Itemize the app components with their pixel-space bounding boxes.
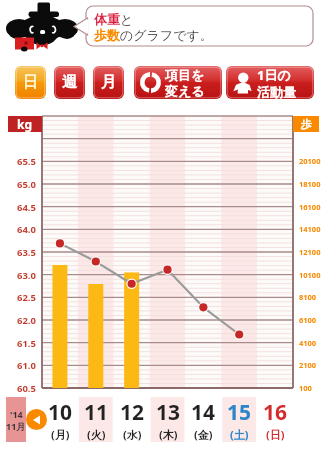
staticText: のグラフです。	[120, 27, 213, 43]
button[interactable]: 項目を	[134, 66, 222, 99]
button[interactable]: 週	[54, 66, 85, 99]
staticText: 変える	[165, 83, 205, 99]
staticText: 13	[156, 398, 181, 427]
staticText: 11月	[6, 420, 26, 432]
button[interactable]: 1日の	[226, 66, 314, 99]
staticText: kg	[17, 116, 33, 132]
staticText: (木)	[159, 427, 178, 442]
button[interactable]: 日	[15, 66, 46, 99]
staticText: 月	[101, 73, 116, 92]
staticText: 65.0	[17, 178, 36, 191]
staticText: 16	[263, 398, 288, 427]
staticText: 62.0	[17, 314, 36, 327]
staticText: 15	[227, 398, 252, 427]
staticText: 週	[62, 73, 77, 92]
staticText: 65.5	[17, 155, 36, 168]
staticText: と	[120, 11, 134, 27]
staticText: 14100	[299, 224, 321, 234]
staticText: 12100	[299, 247, 321, 257]
staticText: 60.5	[17, 382, 36, 395]
staticText: 63.5	[17, 246, 36, 259]
staticText: '14	[10, 408, 23, 420]
button[interactable]: 13	[150, 397, 186, 442]
button[interactable]: 10	[42, 397, 78, 442]
staticText: 8100	[299, 292, 317, 302]
staticText: 18100	[299, 179, 321, 189]
button[interactable]: 15	[221, 397, 257, 442]
staticText: 100	[299, 383, 312, 393]
staticText: 64.5	[17, 201, 36, 214]
staticText: (日)	[266, 427, 285, 442]
staticText: 6100	[299, 315, 317, 325]
staticText: 項目を	[165, 67, 205, 83]
staticText: (土)	[230, 427, 249, 442]
staticText: 63.0	[17, 269, 36, 282]
staticText: 62.5	[17, 291, 36, 304]
staticText: 体重	[94, 11, 120, 27]
button[interactable]: 11	[78, 397, 114, 442]
staticText: 61.0	[17, 359, 36, 372]
staticText: 61.5	[17, 337, 36, 350]
staticText: (金)	[194, 427, 213, 442]
button[interactable]: Previous day	[26, 409, 47, 430]
staticText: 20100	[299, 156, 321, 166]
staticText: 活動量	[257, 84, 296, 99]
staticText: 12	[120, 398, 145, 427]
staticText: 11	[84, 398, 109, 427]
staticText: 日	[23, 73, 38, 92]
button[interactable]: 16	[257, 397, 293, 442]
staticText: 64.0	[17, 223, 36, 236]
button[interactable]: 12	[114, 397, 150, 442]
staticText: 14	[191, 398, 216, 427]
staticText: 16100	[299, 202, 321, 212]
staticText: (月)	[51, 427, 70, 442]
staticText: 10100	[299, 270, 321, 280]
staticText: 10	[48, 398, 73, 427]
staticText: (火)	[87, 427, 106, 442]
button[interactable]: 月	[93, 66, 124, 99]
button[interactable]: 14	[185, 397, 221, 442]
staticText: 1日の	[257, 66, 291, 84]
staticText: 2100	[299, 360, 317, 370]
staticText: 歩	[301, 117, 312, 131]
staticText: 4100	[299, 338, 317, 348]
staticText: (水)	[123, 427, 142, 442]
staticText: 歩数	[94, 27, 120, 43]
